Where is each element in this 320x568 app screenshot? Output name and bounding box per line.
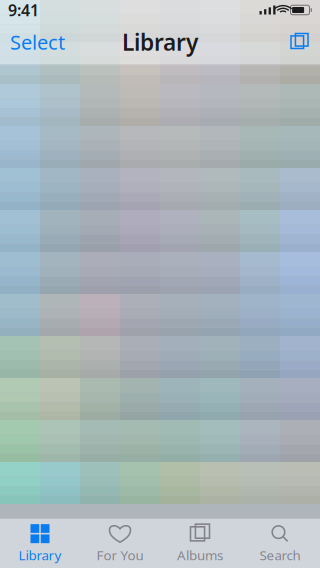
staticText: Select <box>10 29 65 55</box>
staticText: Library <box>18 546 61 564</box>
button[interactable]: For You <box>80 519 160 568</box>
button[interactable]: Library <box>0 519 80 568</box>
staticText: Search <box>259 546 300 564</box>
staticText: Library <box>122 27 198 57</box>
button[interactable]: Search <box>240 519 320 568</box>
staticText: Albums <box>177 546 223 564</box>
staticText: 9:41 <box>8 0 39 21</box>
button[interactable]: Albums <box>160 519 240 568</box>
button[interactable]: Switch view <box>279 20 320 64</box>
staticText: For You <box>96 546 143 564</box>
button[interactable]: Select <box>0 20 75 64</box>
